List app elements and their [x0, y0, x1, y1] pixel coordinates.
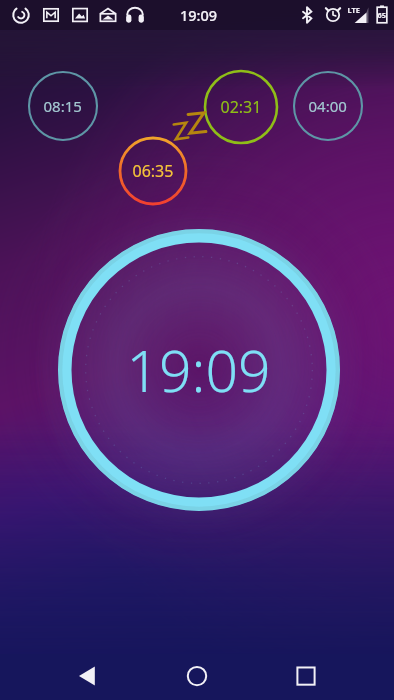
button[interactable]: Alarm 08:15 — [0, 0, 394, 700]
button[interactable]: Alarm 02:31 — [0, 0, 394, 700]
button[interactable]: Snoozed alarm 06:35 — [0, 0, 394, 700]
button[interactable]: Alarm 04:00 — [0, 0, 394, 700]
button[interactable]: Current time 19:09 — [0, 0, 394, 700]
